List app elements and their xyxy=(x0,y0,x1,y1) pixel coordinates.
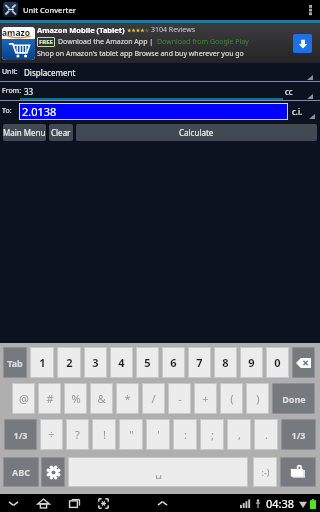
staticText: 33 xyxy=(24,86,34,97)
button[interactable]: 33 xyxy=(20,82,283,100)
button[interactable]: Home xyxy=(34,494,52,512)
button[interactable]: # xyxy=(38,383,61,414)
staticText: 0 xyxy=(274,355,281,370)
staticText: 1 xyxy=(39,355,46,370)
staticText: 4 xyxy=(118,355,125,370)
staticText: To: xyxy=(2,106,12,116)
staticText: ' xyxy=(157,427,160,442)
button[interactable]: ) xyxy=(246,383,269,414)
staticText: , xyxy=(238,427,241,442)
button[interactable]: Backspace xyxy=(292,347,315,378)
button[interactable]: Recents xyxy=(65,494,83,512)
staticText: 6 xyxy=(170,355,177,370)
button[interactable]: Clear xyxy=(49,124,73,141)
button[interactable]: Clipboard xyxy=(280,457,316,487)
button[interactable]: 4 xyxy=(110,347,133,378)
staticText: / xyxy=(151,391,156,406)
staticText: Amazon Mobile (Tablet) xyxy=(37,25,125,35)
staticText: Clear xyxy=(51,127,71,138)
button[interactable]: Settings xyxy=(41,457,65,487)
button[interactable]: @ xyxy=(12,383,35,414)
button[interactable]: 1 xyxy=(30,347,54,378)
button[interactable]: - xyxy=(168,383,191,414)
staticText: ( xyxy=(230,391,234,406)
button[interactable]: 1/3 xyxy=(281,419,316,450)
button[interactable]: Displacement xyxy=(20,63,320,81)
staticText: Unit Converter xyxy=(23,5,76,15)
button[interactable]: 2 xyxy=(57,347,81,378)
button[interactable]: 0 xyxy=(266,347,289,378)
button[interactable]: + xyxy=(194,383,217,414)
button[interactable]: More options xyxy=(300,0,320,20)
staticText: * xyxy=(124,391,131,406)
staticText: ÷ xyxy=(48,427,55,442)
staticText: Download from Google Play xyxy=(157,37,249,47)
button[interactable]: Done xyxy=(272,383,315,414)
button[interactable]: 3 xyxy=(84,347,107,378)
button[interactable]: , xyxy=(227,419,251,450)
button[interactable]: cc xyxy=(283,82,320,100)
button[interactable]: Screenshot xyxy=(94,494,112,512)
button[interactable]: 1/3 xyxy=(4,419,37,450)
button[interactable]: 5 xyxy=(136,347,159,378)
staticText: # xyxy=(46,391,54,406)
button[interactable]: ' xyxy=(146,419,170,450)
button[interactable]: Expand xyxy=(153,494,171,512)
staticText: Tab xyxy=(7,357,23,369)
button[interactable]: ? xyxy=(66,419,89,450)
button[interactable]: ; xyxy=(200,419,224,450)
button[interactable]: Tab xyxy=(3,347,27,378)
button[interactable]: Main Menu xyxy=(3,124,46,141)
staticText: FREE xyxy=(39,38,53,46)
button[interactable]: 6 xyxy=(162,347,185,378)
staticText: 3104 Reviews xyxy=(151,25,196,35)
button[interactable]: c.i. xyxy=(288,101,320,121)
button[interactable]: : xyxy=(173,419,197,450)
button[interactable]: & xyxy=(90,383,113,414)
button[interactable]: " xyxy=(119,419,143,450)
staticText: ABC xyxy=(12,466,30,478)
button[interactable]: ABC xyxy=(3,457,39,487)
staticText: . xyxy=(265,427,268,442)
button[interactable]: / xyxy=(142,383,165,414)
staticText: 7 xyxy=(196,355,203,370)
staticText: + xyxy=(202,391,209,406)
staticText: cc xyxy=(285,86,293,97)
staticText: Download the Amazon App | xyxy=(58,37,154,47)
button[interactable]: 2.0138 xyxy=(19,103,288,120)
button[interactable]: ␣ xyxy=(68,457,248,487)
staticText: 9 xyxy=(248,355,255,370)
staticText: Shop on Amazon's tablet app Browse and b… xyxy=(37,49,244,59)
staticText: Unit: xyxy=(2,67,18,77)
staticText: Done xyxy=(282,393,306,405)
button[interactable]: * xyxy=(116,383,139,414)
staticText: :-) xyxy=(261,466,270,478)
button[interactable]: ! xyxy=(92,419,116,450)
button[interactable]: 9 xyxy=(240,347,263,378)
staticText: amazon xyxy=(2,27,35,39)
staticText: & xyxy=(97,391,106,406)
button[interactable]: ÷ xyxy=(40,419,63,450)
staticText: 2.0138 xyxy=(22,104,57,119)
button[interactable]: :-) xyxy=(253,457,277,487)
staticText: 3 xyxy=(92,355,99,370)
staticText: @ xyxy=(19,391,29,406)
button[interactable]: 8 xyxy=(214,347,237,378)
staticText: 8 xyxy=(222,355,229,370)
staticText: ␣ xyxy=(155,466,162,479)
staticText: % xyxy=(71,391,81,406)
staticText: c.i. xyxy=(292,106,303,117)
staticText: 5 xyxy=(144,355,151,370)
staticText: 1/3 xyxy=(291,429,306,441)
staticText: ; xyxy=(211,427,214,442)
button[interactable]: 7 xyxy=(188,347,211,378)
staticText: : xyxy=(184,427,187,442)
staticText: Main Menu xyxy=(3,127,46,138)
button[interactable]: Download xyxy=(293,34,312,53)
button[interactable]: ( xyxy=(220,383,243,414)
button[interactable]: . xyxy=(254,419,278,450)
button[interactable]: Calculate xyxy=(76,124,317,141)
staticText: ! xyxy=(103,427,106,442)
button[interactable]: % xyxy=(64,383,87,414)
button[interactable]: Back xyxy=(4,494,22,512)
